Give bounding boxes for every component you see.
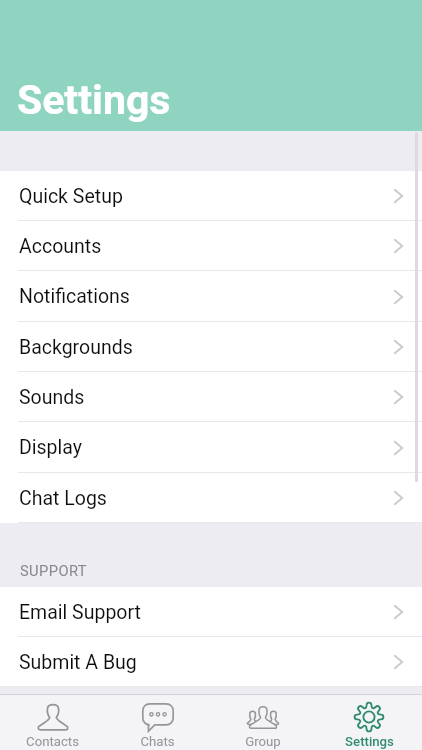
button[interactable]: Contacts xyxy=(0,695,105,750)
staticText: Backgrounds xyxy=(19,336,133,359)
staticText: Quick Setup xyxy=(19,185,123,208)
staticText: Sounds xyxy=(19,386,85,409)
button[interactable]: Settings xyxy=(316,695,422,750)
staticText: Chats xyxy=(140,734,175,749)
button[interactable]: Group xyxy=(210,695,316,750)
staticText: Accounts xyxy=(19,235,102,258)
staticText: Settings xyxy=(345,734,394,749)
button[interactable]: Accounts xyxy=(0,221,422,271)
button[interactable]: Display xyxy=(0,422,422,473)
button[interactable]: Sounds xyxy=(0,372,422,422)
staticText: Notifications xyxy=(19,285,130,308)
staticText: Email Support xyxy=(19,601,141,624)
button[interactable]: Email Support xyxy=(0,587,422,637)
staticText: Display xyxy=(19,436,82,459)
staticText: Submit A Bug xyxy=(19,651,137,674)
staticText: Settings xyxy=(17,76,171,124)
button[interactable]: Backgrounds xyxy=(0,322,422,372)
staticText: Contacts xyxy=(26,734,79,749)
button[interactable]: Chats xyxy=(105,695,210,750)
button[interactable]: Quick Setup xyxy=(0,171,422,221)
staticText: SUPPORT xyxy=(20,562,87,579)
button[interactable]: Chat Logs xyxy=(0,473,422,523)
staticText: Chat Logs xyxy=(19,487,107,510)
staticText: Group xyxy=(245,734,281,749)
button[interactable]: Notifications xyxy=(0,271,422,322)
button[interactable]: Submit A Bug xyxy=(0,637,422,687)
